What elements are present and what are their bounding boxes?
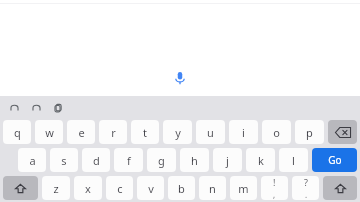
- button[interactable]: w: [35, 120, 63, 144]
- staticText: y: [175, 125, 181, 140]
- button[interactable]: !: [261, 176, 288, 200]
- button[interactable]: x: [74, 176, 102, 200]
- staticText: w: [45, 125, 54, 140]
- button[interactable]: a: [18, 148, 46, 172]
- button[interactable]: y: [163, 120, 192, 144]
- staticText: !: [273, 176, 276, 188]
- button[interactable]: e: [67, 120, 95, 144]
- staticText: h: [191, 153, 198, 168]
- button[interactable]: q: [3, 120, 31, 144]
- button[interactable]: l: [279, 148, 308, 172]
- button[interactable]: b: [168, 176, 195, 200]
- button[interactable]: v: [137, 176, 164, 200]
- button[interactable]: z: [42, 176, 70, 200]
- staticText: s: [61, 153, 67, 168]
- button[interactable]: Clipboard: [50, 99, 66, 115]
- staticText: n: [209, 181, 216, 196]
- button[interactable]: u: [196, 120, 225, 144]
- staticText: e: [78, 125, 85, 140]
- button[interactable]: s: [50, 148, 78, 172]
- button[interactable]: r: [99, 120, 127, 144]
- staticText: j: [226, 153, 229, 168]
- button[interactable]: Voice input: [170, 68, 190, 88]
- staticText: r: [111, 125, 116, 140]
- staticText: d: [93, 153, 100, 168]
- staticText: l: [292, 153, 295, 168]
- staticText: m: [238, 181, 249, 196]
- button[interactable]: h: [180, 148, 209, 172]
- button[interactable]: o: [262, 120, 291, 144]
- button[interactable]: Shift: [323, 176, 357, 200]
- staticText: i: [242, 125, 245, 140]
- staticText: z: [53, 181, 59, 196]
- button[interactable]: g: [147, 148, 176, 172]
- button[interactable]: c: [106, 176, 133, 200]
- button[interactable]: Redo: [28, 99, 44, 115]
- staticText: v: [148, 181, 154, 196]
- button[interactable]: t: [131, 120, 159, 144]
- staticText: a: [29, 153, 36, 168]
- button[interactable]: k: [246, 148, 275, 172]
- staticText: p: [306, 125, 313, 140]
- staticText: q: [14, 125, 21, 140]
- button[interactable]: n: [199, 176, 226, 200]
- button[interactable]: Go: [312, 148, 357, 172]
- button[interactable]: Shift: [3, 176, 38, 200]
- staticText: b: [178, 181, 185, 196]
- staticText: k: [258, 153, 264, 168]
- button[interactable]: p: [295, 120, 324, 144]
- staticText: c: [117, 181, 123, 196]
- staticText: u: [207, 125, 214, 140]
- button[interactable]: ?: [292, 176, 319, 200]
- staticText: f: [127, 153, 131, 168]
- staticText: ?: [304, 176, 308, 188]
- staticText: x: [85, 181, 91, 196]
- staticText: t: [143, 125, 147, 140]
- staticText: .: [305, 189, 308, 200]
- staticText: g: [158, 153, 165, 168]
- button[interactable]: Backspace: [328, 120, 357, 144]
- staticText: Go: [328, 153, 342, 167]
- button[interactable]: j: [213, 148, 242, 172]
- staticText: ,: [273, 189, 276, 200]
- button[interactable]: d: [82, 148, 110, 172]
- button[interactable]: m: [230, 176, 257, 200]
- button[interactable]: Undo: [6, 99, 22, 115]
- button[interactable]: f: [114, 148, 143, 172]
- staticText: o: [273, 125, 280, 140]
- button[interactable]: i: [229, 120, 258, 144]
